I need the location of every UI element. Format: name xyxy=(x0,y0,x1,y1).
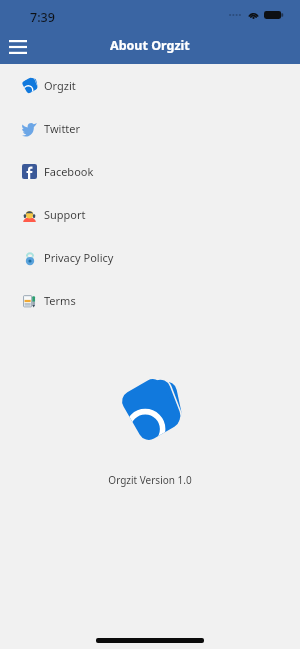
staticText: About Orgzit xyxy=(110,37,190,54)
staticText: Orgzit Version 1.0 xyxy=(0,473,300,487)
staticText: Facebook xyxy=(44,164,94,179)
button[interactable]: Open navigation menu xyxy=(0,25,40,69)
button[interactable]: Orgzit xyxy=(0,64,300,107)
staticText: Orgzit xyxy=(44,78,76,93)
button[interactable]: Facebook xyxy=(0,150,300,193)
staticText: 7:39 xyxy=(30,9,55,26)
button[interactable]: Terms xyxy=(0,279,300,322)
staticText: Terms xyxy=(44,293,76,308)
staticText: Privacy Policy xyxy=(44,250,114,265)
button[interactable]: Twitter xyxy=(0,107,300,150)
button[interactable]: Privacy Policy xyxy=(0,236,300,279)
button[interactable]: Support xyxy=(0,193,300,236)
staticText: Support xyxy=(44,207,86,222)
staticText: Twitter xyxy=(44,121,81,136)
